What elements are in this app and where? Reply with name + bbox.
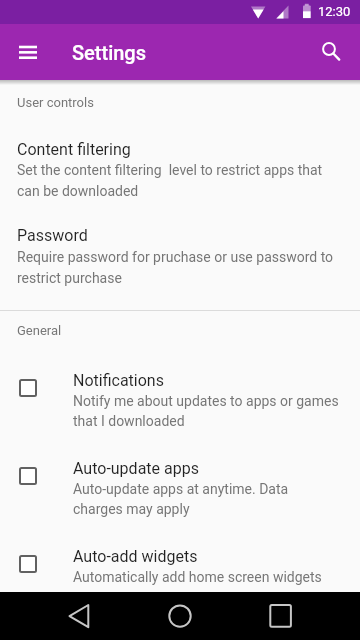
- staticText: Auto-update apps at anytime. Data: [73, 481, 289, 497]
- button[interactable]: [4, 28, 52, 76]
- staticText: User controls: [17, 95, 94, 110]
- staticText: Automatically add home screen widgets: [73, 569, 322, 585]
- staticText: General: [17, 323, 62, 338]
- staticText: Notifications: [73, 371, 164, 390]
- staticText: Settings: [72, 41, 147, 64]
- staticText: charges may apply: [73, 501, 190, 517]
- staticText: Content filtering: [17, 140, 131, 159]
- button[interactable]: Auto-update apps: [0, 452, 360, 540]
- staticText: Auto-update apps: [73, 459, 199, 478]
- staticText: restrict purchase: [17, 270, 122, 286]
- staticText: Auto-add widgets: [73, 547, 198, 566]
- button[interactable]: [145, 592, 215, 640]
- button[interactable]: Auto-add widgets: [0, 540, 360, 628]
- button[interactable]: Notifications: [0, 364, 360, 452]
- button[interactable]: Password: [0, 215, 360, 295]
- staticText: Notify me about updates to apps or games: [73, 393, 339, 409]
- staticText: 12:30: [318, 4, 351, 19]
- staticText: Require password for pruchase or use pas…: [17, 249, 334, 265]
- button[interactable]: [305, 26, 353, 74]
- button[interactable]: Content filtering: [0, 128, 360, 206]
- staticText: that I downloaded: [73, 413, 185, 429]
- button[interactable]: [44, 592, 114, 640]
- staticText: Password: [17, 226, 88, 245]
- staticText: can be downloaded: [17, 183, 139, 199]
- staticText: Set the content filtering level to restr…: [17, 162, 323, 178]
- button[interactable]: [246, 592, 316, 640]
